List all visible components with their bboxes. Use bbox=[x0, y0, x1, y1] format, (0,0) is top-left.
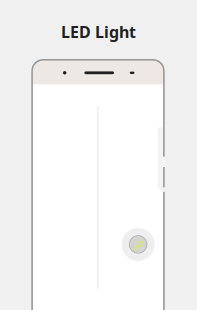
staticText: LED Light bbox=[61, 21, 136, 42]
button[interactable]: Toggle flashlight bbox=[122, 228, 155, 261]
